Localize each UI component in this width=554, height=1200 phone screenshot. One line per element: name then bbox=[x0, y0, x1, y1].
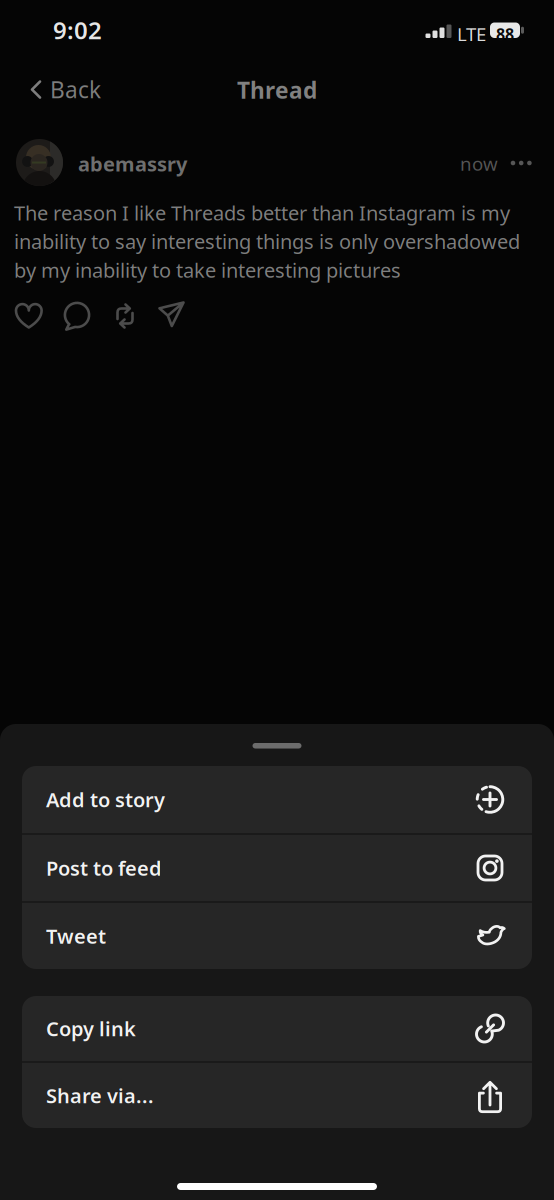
button[interactable]: Share via... bbox=[22, 1063, 532, 1128]
staticText: now bbox=[460, 151, 498, 176]
staticText: Add to story bbox=[46, 786, 165, 813]
staticText: Share via... bbox=[46, 1082, 154, 1109]
staticText: Copy link bbox=[46, 1015, 136, 1042]
button[interactable]: Share bbox=[158, 301, 188, 331]
staticText: abemassry bbox=[78, 150, 187, 177]
staticText: Back bbox=[50, 74, 101, 105]
staticText: inability to say interesting things is o… bbox=[14, 228, 520, 255]
button[interactable]: Add to story bbox=[22, 766, 532, 833]
staticText: Tweet bbox=[46, 923, 106, 949]
staticText: Thread bbox=[237, 75, 317, 105]
button[interactable]: More options bbox=[510, 160, 533, 166]
button[interactable]: Back bbox=[29, 74, 101, 105]
button[interactable]: Repost bbox=[110, 301, 140, 331]
staticText: 9:02 bbox=[53, 14, 102, 46]
button[interactable]: Like bbox=[14, 301, 44, 331]
staticText: Post to feed bbox=[46, 855, 162, 881]
staticText: 88 bbox=[496, 23, 514, 45]
button[interactable]: Tweet bbox=[22, 903, 532, 969]
button[interactable]: abemassry bbox=[78, 150, 187, 177]
button[interactable]: Comment bbox=[62, 301, 92, 331]
button[interactable]: Copy link bbox=[22, 996, 532, 1061]
staticText: The reason I like Threads better than In… bbox=[14, 199, 510, 226]
staticText: by my inability to take interesting pict… bbox=[14, 257, 401, 283]
staticText: LTE bbox=[457, 21, 486, 46]
button[interactable]: Post to feed bbox=[22, 835, 532, 901]
